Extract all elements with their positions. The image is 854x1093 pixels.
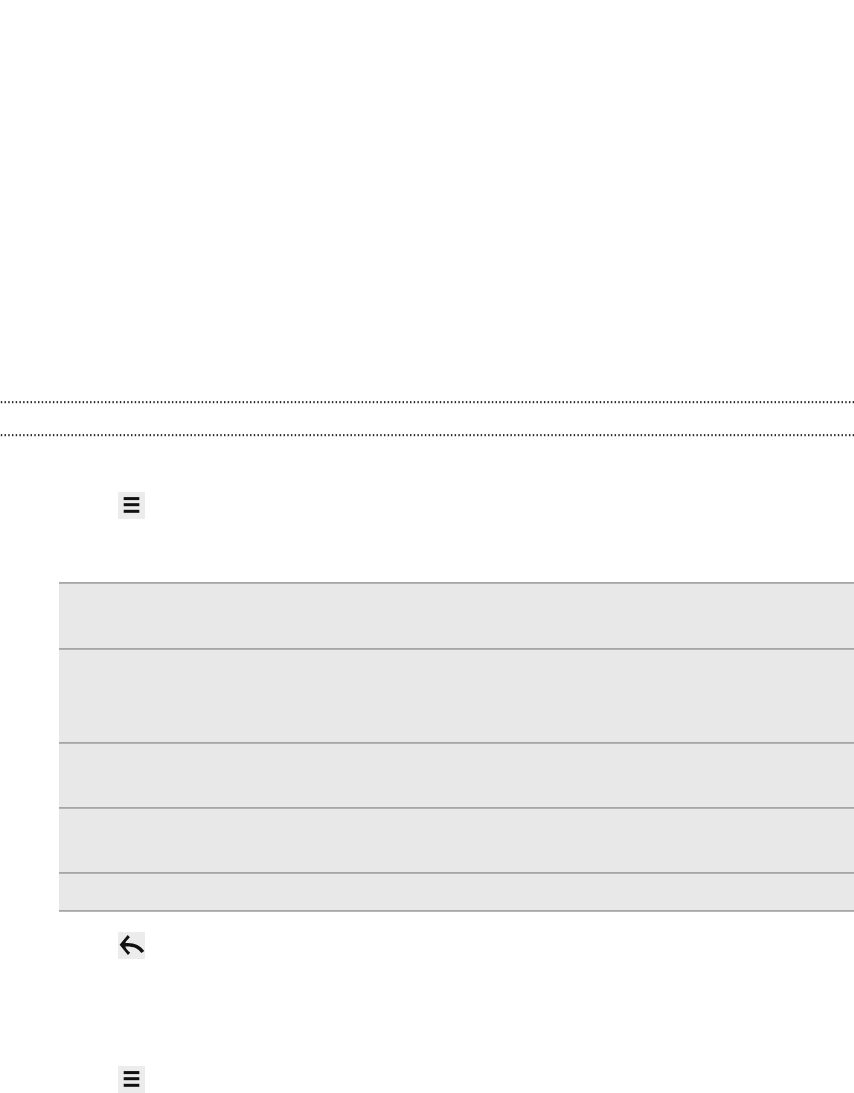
button[interactable] bbox=[59, 648, 854, 742]
button[interactable] bbox=[59, 872, 854, 910]
button[interactable] bbox=[59, 742, 854, 807]
button[interactable] bbox=[59, 807, 854, 872]
button[interactable]: Back bbox=[118, 932, 145, 959]
button[interactable] bbox=[59, 582, 854, 648]
button[interactable]: Open navigation menu bbox=[118, 1066, 145, 1093]
button[interactable]: Open navigation menu bbox=[118, 492, 145, 519]
